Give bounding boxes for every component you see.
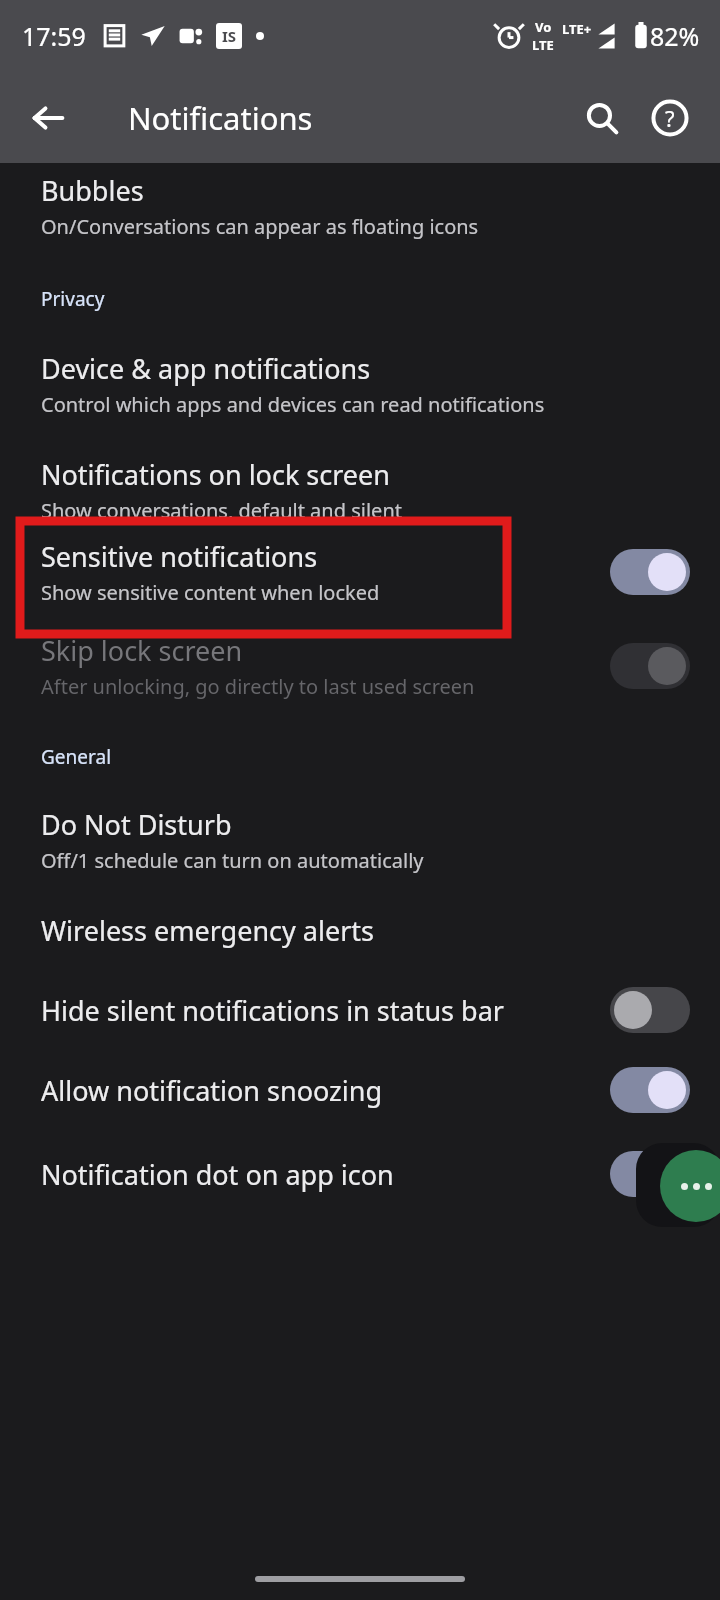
button[interactable]: Do Not Disturb	[0, 806, 720, 874]
staticText: LTE+	[562, 20, 592, 38]
staticText: Wireless emergency alerts	[41, 912, 375, 949]
button[interactable]: Device & app notifications	[0, 350, 720, 418]
staticText: Notifications on lock screen	[41, 456, 391, 493]
staticText: ?	[665, 103, 675, 133]
button[interactable]: Hide silent notifications in status bar	[0, 987, 720, 1033]
staticText: LTE	[532, 36, 554, 54]
staticText: Show conversations, default and silent	[41, 497, 402, 524]
button[interactable]: Toggle	[610, 643, 690, 689]
button[interactable]: Chat bubble	[660, 1150, 720, 1222]
staticText: On/Conversations can appear as floating …	[41, 213, 479, 240]
staticText: 82%	[650, 19, 700, 53]
button[interactable]: Search	[574, 90, 630, 146]
staticText: Vo	[535, 18, 552, 36]
staticText: Off/1 schedule can turn on automatically	[41, 847, 424, 874]
staticText: Show sensitive content when locked	[41, 579, 380, 606]
button[interactable]: Bubbles	[0, 172, 720, 240]
staticText: IS	[222, 26, 237, 46]
staticText: Skip lock screen	[41, 632, 243, 669]
button[interactable]: Notification dot on app icon	[0, 1151, 720, 1197]
button[interactable]: Allow notification snoozing	[0, 1067, 720, 1113]
staticText: After unlocking, go directly to last use…	[41, 673, 475, 700]
staticText: Control which apps and devices can read …	[41, 391, 545, 418]
staticText: Notifications	[128, 97, 313, 139]
button[interactable]: Toggle	[610, 1067, 690, 1113]
staticText: Hide silent notifications in status bar	[41, 992, 504, 1029]
button[interactable]: Toggle	[610, 1151, 690, 1197]
button[interactable]: Help	[642, 90, 698, 146]
button[interactable]: Back	[20, 90, 76, 146]
staticText: Device & app notifications	[41, 350, 371, 387]
staticText: Notification dot on app icon	[41, 1156, 394, 1193]
button[interactable]: Sensitive notifications	[0, 538, 720, 606]
button[interactable]: Notifications on lock screen	[0, 456, 720, 524]
staticText: Privacy	[41, 286, 105, 312]
button[interactable]: Wireless emergency alerts	[0, 912, 720, 949]
staticText: Do Not Disturb	[41, 806, 232, 843]
staticText: Sensitive notifications	[41, 538, 318, 575]
staticText: 17:59	[22, 19, 86, 53]
staticText: Allow notification snoozing	[41, 1072, 383, 1109]
button[interactable]: Toggle	[610, 549, 690, 595]
button[interactable]: Skip lock screen	[0, 632, 720, 700]
staticText: General	[41, 744, 112, 770]
button[interactable]: Toggle	[610, 987, 690, 1033]
staticText: Bubbles	[41, 172, 144, 209]
